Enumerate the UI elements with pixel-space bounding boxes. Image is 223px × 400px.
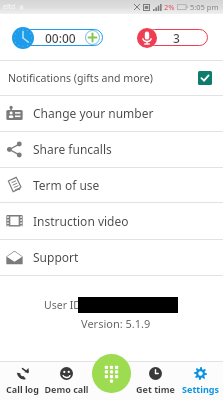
- staticText: Version: 5.1.9: [81, 316, 151, 331]
- button[interactable]: Get time: [133, 361, 178, 400]
- button[interactable]: Change your number: [0, 95, 223, 131]
- button[interactable]: Instruction video: [0, 202, 223, 239]
- staticText: Notifications (gifts and more): [8, 71, 153, 85]
- button[interactable]: Timer: [12, 27, 34, 49]
- staticText: User ID:: [44, 298, 84, 312]
- staticText: 3: [173, 30, 180, 45]
- staticText: 5:05 pm: [190, 2, 219, 12]
- staticText: Settings: [182, 383, 219, 395]
- button[interactable]: [146, 29, 208, 46]
- staticText: Term of use: [33, 177, 100, 193]
- staticText: Change your number: [33, 105, 154, 121]
- button[interactable]: Dialpad: [92, 354, 131, 393]
- button[interactable]: Settings: [178, 361, 223, 400]
- button[interactable]: Notifications (gifts and more): [0, 60, 223, 95]
- button[interactable]: Support: [0, 239, 223, 275]
- staticText: Instruction video: [33, 213, 129, 229]
- staticText: Share funcalls: [33, 141, 112, 157]
- staticText: Call log: [6, 383, 39, 395]
- staticText: Demo call: [44, 383, 88, 395]
- staticText: eltd: [3, 2, 16, 12]
- staticText: Get time: [136, 383, 175, 395]
- button[interactable]: Term of use: [0, 167, 223, 202]
- button[interactable]: Share funcalls: [0, 131, 223, 167]
- staticText: 00:00: [45, 30, 76, 45]
- button[interactable]: Call log: [0, 361, 44, 400]
- button[interactable]: [22, 29, 103, 46]
- staticText: Support: [33, 249, 79, 265]
- button[interactable]: Add time: [85, 30, 100, 45]
- button[interactable]: Demo call: [44, 361, 88, 400]
- staticText: 2%: [164, 2, 175, 12]
- button[interactable]: Recordings: [137, 28, 157, 48]
